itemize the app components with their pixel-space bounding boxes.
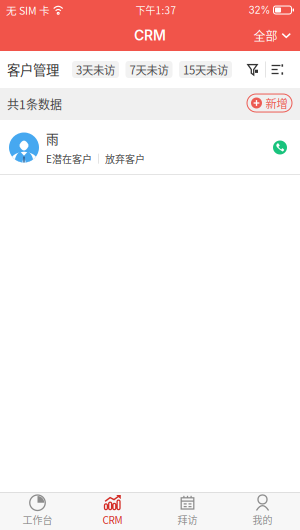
staticText: 雨 [46,129,59,147]
staticText: 客户管理 [7,60,59,79]
button[interactable]: 15天未访 [179,61,232,78]
staticText: 7天未访 [129,61,168,78]
button[interactable]: 排序 [266,58,289,81]
staticText: 拜访 [177,512,197,527]
staticText: 32% [248,4,270,16]
staticText: 15天未访 [183,61,228,78]
button[interactable]: 全部 [243,20,300,51]
staticText: 3天未访 [76,61,115,78]
staticText: 工作台 [22,512,52,527]
button[interactable]: 工作台 [0,492,75,530]
button[interactable]: 雨 [0,120,300,175]
staticText: 我的 [252,512,272,527]
staticText: 共1条数据 [7,95,62,113]
staticText: 放弃客户 [105,151,145,166]
button[interactable]: CRM [75,492,150,530]
button[interactable]: 7天未访 [125,61,172,78]
staticText: CRM [102,512,122,527]
staticText: CRM [134,27,166,44]
button[interactable]: 3天未访 [72,61,119,78]
button[interactable]: 拜访 [150,492,225,530]
staticText: E潜在客户 [46,151,92,166]
staticText: 全部 [253,27,277,44]
button[interactable]: 我的 [225,492,300,530]
button[interactable]: 新增 [247,94,292,112]
button[interactable]: 筛选 [241,57,265,82]
staticText: 下午1:37 [135,3,176,17]
staticText: 无 SIM 卡 [6,2,50,18]
staticText: 新增 [265,95,287,111]
